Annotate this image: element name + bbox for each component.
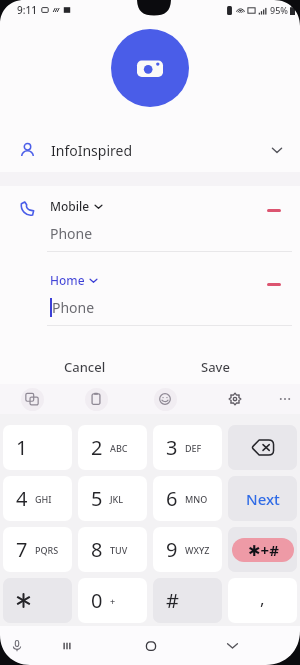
button[interactable]: Home xyxy=(50,272,98,288)
staticText: ✱+# xyxy=(248,540,279,560)
staticText: Phone xyxy=(50,224,93,243)
button[interactable] xyxy=(3,578,72,623)
staticText: 95% xyxy=(270,4,288,16)
button[interactable]: More options xyxy=(270,384,300,414)
staticText: 1 xyxy=(16,434,28,461)
staticText: # xyxy=(166,587,179,614)
staticText: 7 xyxy=(16,536,28,563)
staticText: 6 xyxy=(166,485,178,512)
staticText: 0 xyxy=(91,587,103,614)
staticText: Next xyxy=(246,489,280,509)
button[interactable]: 7 xyxy=(3,527,72,572)
button[interactable]: Translate xyxy=(17,384,47,414)
staticText: 2 xyxy=(91,434,103,461)
button[interactable]: Save xyxy=(183,350,247,384)
button[interactable]: 5 xyxy=(78,476,147,521)
staticText: 5 xyxy=(91,485,103,512)
button[interactable]: Backspace xyxy=(228,425,297,470)
button[interactable]: Clipboard xyxy=(81,384,111,414)
button[interactable]: Next xyxy=(228,476,297,521)
button[interactable]: Voice input xyxy=(0,626,36,665)
staticText: DEF xyxy=(185,442,202,454)
button[interactable]: 2 xyxy=(78,425,147,470)
staticText: 4 xyxy=(16,485,28,512)
button[interactable]: Remove Home phone xyxy=(253,260,295,308)
button[interactable]: 1 xyxy=(3,425,72,470)
staticText: 9:11 xyxy=(17,3,37,17)
button[interactable]: Expand name fields xyxy=(260,133,294,167)
staticText: ABC xyxy=(110,442,128,454)
staticText: GHI xyxy=(35,493,52,505)
button[interactable]: , xyxy=(228,578,297,623)
staticText: PQRS xyxy=(35,544,59,556)
button[interactable]: 8 xyxy=(78,527,147,572)
staticText: Home xyxy=(50,272,85,288)
button[interactable]: Symbols xyxy=(228,527,297,572)
button[interactable]: Mobile xyxy=(50,198,103,214)
button[interactable]: Remove Mobile phone xyxy=(253,186,295,234)
staticText: Save xyxy=(201,358,230,376)
button[interactable]: Home xyxy=(132,626,170,665)
button[interactable]: 3 xyxy=(153,425,222,470)
staticText: Phone xyxy=(52,298,95,317)
staticText: + xyxy=(110,595,116,607)
button[interactable]: 6 xyxy=(153,476,222,521)
staticText: 9 xyxy=(166,536,178,563)
button[interactable]: 9 xyxy=(153,527,222,572)
staticText: , xyxy=(260,587,265,610)
button[interactable]: 4 xyxy=(3,476,72,521)
button[interactable]: InfoInspired xyxy=(0,128,300,172)
button[interactable]: Cancel xyxy=(50,350,120,384)
button[interactable]: Keyboard settings xyxy=(220,384,250,414)
button[interactable]: 0 xyxy=(78,578,147,623)
staticText: JKL xyxy=(110,493,124,505)
staticText: InfoInspired xyxy=(51,141,133,160)
staticText: WXYZ xyxy=(185,544,210,556)
staticText: 3 xyxy=(166,434,178,461)
button[interactable]: Add contact photo xyxy=(111,29,189,107)
staticText: TUV xyxy=(110,544,128,556)
button[interactable]: Emoji xyxy=(150,384,180,414)
button[interactable]: Hide keyboard xyxy=(213,626,251,665)
staticText: 8 xyxy=(91,536,103,563)
button[interactable]: # xyxy=(153,578,222,623)
staticText: Mobile xyxy=(50,198,90,214)
staticText: MNO xyxy=(185,493,208,505)
button[interactable]: Recent apps xyxy=(48,626,86,665)
staticText: Cancel xyxy=(64,358,106,376)
